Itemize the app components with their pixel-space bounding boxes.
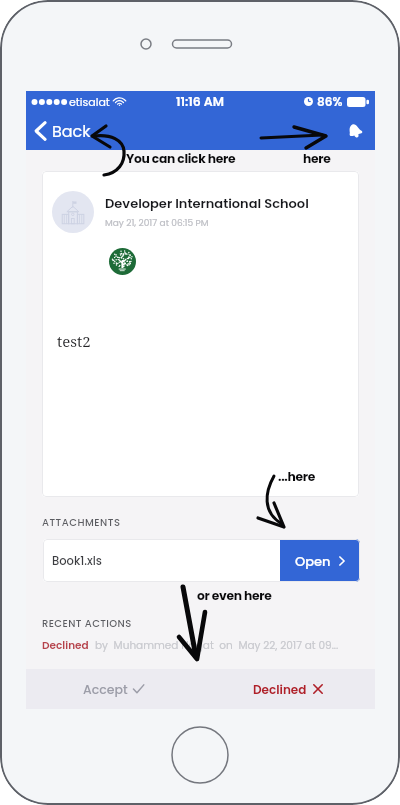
button[interactable]: Notifications	[342, 118, 368, 144]
button[interactable]: Declined	[200, 669, 375, 709]
staticText: Developer International School	[105, 194, 309, 212]
staticText: by Muhammed Nagat on May 22, 2017 at 09.…	[95, 638, 339, 653]
staticText: Open	[295, 552, 331, 570]
button[interactable]: Back	[35, 112, 91, 150]
button[interactable]: Accept	[26, 669, 200, 709]
staticText: or even here	[197, 587, 272, 604]
staticText: etisalat	[69, 94, 110, 109]
staticText: Book1.xls	[52, 553, 280, 569]
staticText: RECENT ACTIONS	[42, 616, 132, 630]
staticText: here	[303, 150, 331, 167]
staticText: ATTACHMENTS	[42, 515, 121, 529]
staticText: Accept	[83, 681, 128, 698]
staticText: May 21, 2017 at 06:15 PM	[105, 217, 209, 230]
staticText: ...here	[278, 468, 316, 485]
button[interactable]: Open	[280, 539, 360, 582]
staticText: You can click here	[126, 150, 236, 167]
staticText: Declined	[42, 638, 89, 653]
staticText: Back	[52, 120, 91, 142]
staticText: 11:16 AM	[176, 93, 225, 110]
staticText: Declined	[253, 681, 307, 698]
staticText: 86%	[317, 93, 343, 110]
staticText: test2	[57, 331, 91, 351]
